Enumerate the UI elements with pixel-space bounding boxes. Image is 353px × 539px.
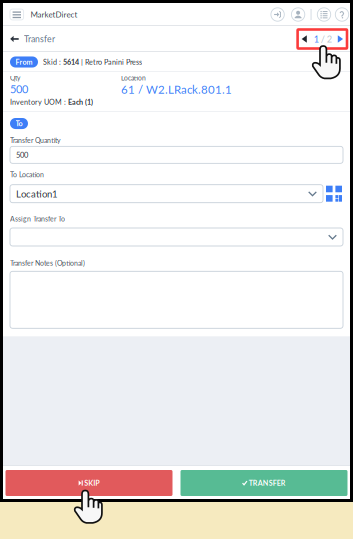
staticText: Transfer (24, 34, 55, 44)
button[interactable]: Previous page (302, 35, 307, 43)
button[interactable]: TRANSFER (180, 470, 347, 496)
staticText: 5614 (63, 58, 79, 66)
button[interactable]: Orders (317, 7, 331, 21)
staticText: TRANSFER (249, 479, 286, 487)
staticText: SKIP (84, 479, 99, 487)
button[interactable]: Help (335, 7, 349, 21)
staticText: Qty (10, 74, 20, 82)
button[interactable]: Sign out (271, 7, 285, 21)
staticText: Assign Transfer To (10, 215, 65, 223)
staticText: To Location (10, 170, 44, 179)
button[interactable]: Account (291, 7, 305, 21)
staticText: Location1 (16, 188, 58, 199)
staticText: Transfer Notes (Optional) (10, 259, 85, 267)
staticText: From (15, 58, 32, 66)
staticText: Inventory UOM : (10, 98, 68, 106)
button[interactable]: SKIP (5, 470, 172, 496)
staticText: Each (1) (68, 98, 93, 106)
staticText: / 2 (319, 33, 332, 45)
staticText: Location (121, 74, 146, 82)
staticText: 1 (314, 33, 319, 45)
staticText: 500 (10, 82, 28, 96)
staticText: Skid : (43, 58, 63, 66)
staticText: 500 (16, 150, 28, 159)
staticText: MarketDirect (31, 10, 78, 19)
button[interactable]: Menu (10, 9, 24, 20)
staticText: To (15, 119, 22, 128)
staticText: 61 / W2.LRack.801.1 (121, 82, 232, 96)
button[interactable]: Next page (338, 35, 343, 43)
button[interactable]: Transfer (10, 30, 55, 48)
staticText (10, 285, 16, 315)
staticText: Transfer Quantity (10, 136, 61, 144)
staticText: | Retro Panini Press (79, 58, 142, 66)
